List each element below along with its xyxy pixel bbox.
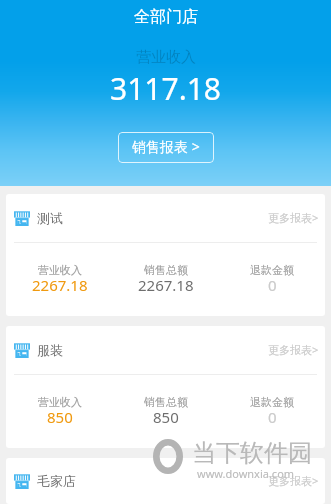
- staticText: 营业收入: [136, 48, 196, 67]
- staticText: 2267.18: [138, 275, 194, 295]
- button[interactable]: 销售报表 >: [118, 132, 214, 163]
- staticText: 更多报表>: [268, 342, 319, 357]
- other: Store: [14, 211, 30, 226]
- staticText: 3117.18: [110, 68, 221, 109]
- staticText: 2267.18: [32, 275, 88, 295]
- staticText: 更多报表>: [268, 473, 319, 488]
- other: Store: [14, 474, 30, 489]
- other: Store: [14, 343, 30, 358]
- staticText: 销售总额: [144, 263, 188, 277]
- staticText: www.downxia.com: [197, 466, 295, 481]
- staticText: 更多报表>: [268, 210, 319, 225]
- button[interactable]: Store: [6, 194, 325, 316]
- staticText: 测试: [37, 210, 63, 226]
- staticText: 服装: [37, 342, 63, 358]
- staticText: 销售报表 >: [132, 137, 200, 156]
- staticText: 0: [268, 275, 277, 295]
- button[interactable]: Store: [6, 458, 325, 504]
- staticText: 营业收入: [38, 263, 82, 277]
- staticText: 退款金额: [250, 263, 294, 277]
- staticText: 营业收入: [38, 395, 82, 409]
- staticText: 850: [153, 407, 179, 427]
- staticText: 0: [268, 407, 277, 427]
- button[interactable]: Store: [6, 326, 325, 448]
- staticText: 毛家店: [37, 473, 76, 489]
- staticText: 850: [47, 407, 73, 427]
- staticText: 销售总额: [144, 395, 188, 409]
- staticText: 全部门店: [134, 7, 198, 27]
- staticText: 退款金额: [250, 395, 294, 409]
- staticText: 当下软件园: [192, 438, 312, 468]
